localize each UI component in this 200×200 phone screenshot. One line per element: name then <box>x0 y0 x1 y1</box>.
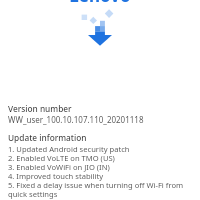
staticText: 1. Updated Android security patch 2. Ena… <box>8 144 193 199</box>
staticText: Update information <box>8 132 87 143</box>
other: System update download <box>78 6 122 50</box>
staticText: Version number <box>8 103 72 114</box>
staticText: WW_user_100.10.107.110_20201118 <box>8 114 144 125</box>
staticText: Lenovo <box>0 0 200 7</box>
